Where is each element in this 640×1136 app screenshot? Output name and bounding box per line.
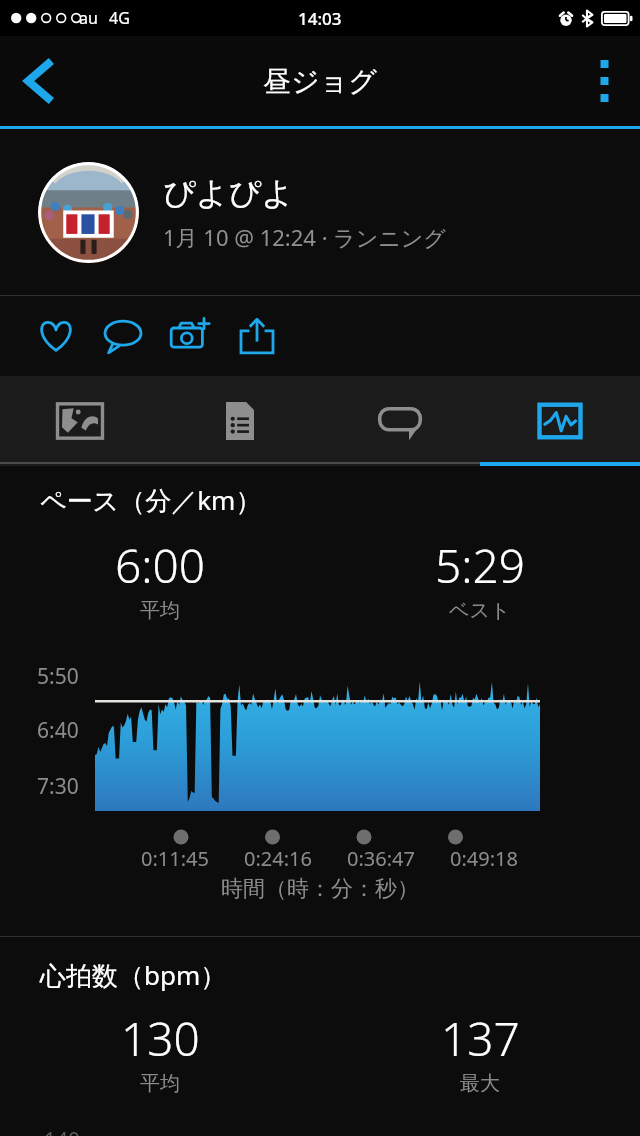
staticText: 0:11:45 — [141, 845, 209, 872]
button[interactable]: Laps — [320, 376, 480, 466]
staticText: 130 — [121, 1007, 200, 1070]
button[interactable]: More options — [568, 36, 640, 126]
staticText: ペース（分／km） — [40, 482, 262, 518]
staticText: 6:00 — [115, 534, 206, 597]
staticText: 0:36:47 — [347, 845, 415, 872]
staticText: 4G — [109, 7, 130, 29]
staticText: 1月 10 @ 12:24 · ランニング — [163, 222, 446, 252]
button[interactable]: Analysis — [480, 376, 640, 466]
button[interactable]: Comment — [89, 299, 156, 373]
staticText: 140 — [44, 1126, 81, 1136]
staticText: 最大 — [460, 1071, 500, 1096]
staticText: 0:24:16 — [244, 845, 312, 872]
button[interactable]: Share — [223, 299, 290, 373]
staticText: 7:30 — [37, 772, 79, 801]
staticText: 5:29 — [435, 534, 526, 597]
staticText: 5:50 — [37, 662, 79, 691]
staticText: 昼ジョグ — [263, 64, 377, 99]
staticText: 平均 — [140, 598, 180, 623]
staticText: au — [79, 7, 98, 29]
staticText: 0:49:18 — [450, 845, 518, 872]
staticText: 137 — [441, 1007, 520, 1070]
button[interactable]: Back — [0, 36, 78, 126]
staticText: ぴよぴよ — [163, 173, 294, 213]
button[interactable]: Splits — [160, 376, 320, 466]
staticText: 6:40 — [37, 716, 79, 745]
button[interactable]: ぴよぴよ — [0, 129, 640, 295]
button[interactable]: Map — [0, 376, 160, 466]
button[interactable]: Like — [22, 299, 89, 373]
staticText: 時間（時：分：秒） — [221, 875, 419, 903]
button[interactable]: Add photo — [156, 299, 223, 373]
staticText: ベスト — [449, 598, 511, 623]
staticText: 14:03 — [298, 7, 342, 30]
staticText: 心拍数（bpm） — [40, 957, 227, 993]
staticText: 平均 — [140, 1071, 180, 1096]
